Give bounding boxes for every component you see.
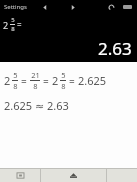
staticText: 2 — [52, 73, 59, 88]
button[interactable]: Previous — [40, 2, 51, 13]
staticText: 8 — [61, 81, 66, 91]
staticText: 2.625 — [78, 73, 107, 88]
button[interactable]: Undo — [105, 1, 117, 13]
staticText: = — [17, 19, 22, 30]
button[interactable]: Next — [67, 2, 78, 13]
staticText: 5 — [61, 70, 66, 80]
staticText: = — [43, 74, 49, 88]
button[interactable]: Backspace — [120, 0, 134, 14]
staticText: 2.625 ≈ 2.63 — [4, 98, 69, 113]
staticText: 21 — [31, 70, 40, 80]
staticText: 2 — [3, 19, 9, 31]
button[interactable]: Settings — [3, 2, 28, 12]
staticText: = — [69, 74, 75, 88]
button[interactable]: Keyboard — [41, 169, 106, 182]
staticText: = — [21, 74, 27, 88]
staticText: 8 — [13, 81, 18, 91]
button[interactable]: Recents — [0, 169, 40, 182]
staticText: 5 — [13, 70, 18, 80]
staticText: Settings — [4, 3, 27, 11]
staticText: 5 — [11, 16, 15, 24]
staticText: 2.63 — [98, 37, 132, 60]
staticText: 8 — [11, 25, 15, 33]
staticText: 8 — [33, 81, 38, 91]
staticText: 2 — [4, 73, 11, 88]
